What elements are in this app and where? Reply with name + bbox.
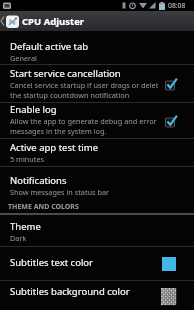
button[interactable]: Enable log [0, 103, 194, 138]
staticText: THEME AND COLORS [8, 202, 79, 212]
staticText: Allow the app to generate debug and erro… [10, 116, 157, 126]
staticText: Default active tab [10, 40, 89, 53]
button[interactable]: Theme [0, 215, 194, 246]
staticText: General [10, 53, 37, 63]
button[interactable]: Active app test time [0, 139, 194, 166]
staticText: Start service cancellation [10, 67, 121, 80]
button[interactable]: Start service cancellation [0, 65, 194, 102]
staticText: 08:08 [168, 1, 186, 10]
staticText: Active app test time [10, 141, 99, 154]
button[interactable]: Subtitles text color [0, 247, 194, 280]
button[interactable]: CPU Adjuster [0, 11, 194, 31]
staticText: Notifications [10, 174, 67, 187]
staticText: Enable log [10, 103, 57, 116]
staticText: Show messages in status bar [10, 187, 110, 197]
button[interactable]: Default active tab [0, 31, 194, 64]
button[interactable]: Notifications [0, 167, 194, 197]
staticText: CPU Adjuster [22, 15, 85, 28]
button[interactable]: Subtitles background color [0, 281, 194, 310]
staticText: 5 minutes [10, 154, 45, 164]
staticText: the startup countdown notification [10, 90, 130, 100]
staticText: Cancel service startup if user drags or … [10, 80, 158, 90]
staticText: Dark [10, 233, 27, 243]
staticText: messages in the system log. [10, 126, 107, 136]
staticText: Theme [10, 220, 41, 233]
staticText: Subtitles text color [10, 256, 94, 269]
staticText: Subtitles background color [10, 285, 130, 298]
